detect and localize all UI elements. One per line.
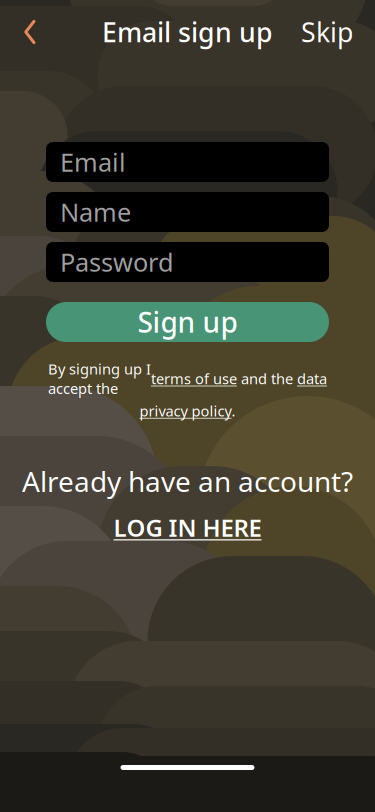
staticText: data [297, 369, 327, 388]
staticText: Skip [301, 14, 353, 50]
button[interactable]: LOG IN HERE [103, 506, 271, 549]
staticText: Already have an account? [22, 462, 353, 500]
button[interactable]: data [297, 369, 327, 388]
button[interactable]: Name [46, 192, 329, 232]
staticText: Sign up [137, 303, 237, 341]
staticText: and the [237, 369, 297, 388]
button[interactable]: Back [8, 10, 52, 54]
staticText: LOG IN HERE [113, 512, 261, 543]
staticText: Email sign up [102, 14, 273, 50]
staticText: Password [60, 245, 174, 279]
button[interactable]: Email [46, 142, 329, 182]
button[interactable]: Skip [291, 10, 363, 54]
staticText: Name [60, 195, 131, 229]
staticText: Email [60, 145, 126, 179]
button[interactable]: Password [46, 242, 329, 282]
button[interactable]: privacy policy [139, 401, 231, 420]
button[interactable]: terms of use [151, 369, 237, 388]
button[interactable]: Sign up [46, 302, 329, 342]
staticText: privacy policy [139, 401, 231, 420]
staticText: terms of use [151, 369, 237, 388]
staticText: . [231, 401, 235, 420]
staticText: By signing up I accept the [48, 359, 151, 398]
